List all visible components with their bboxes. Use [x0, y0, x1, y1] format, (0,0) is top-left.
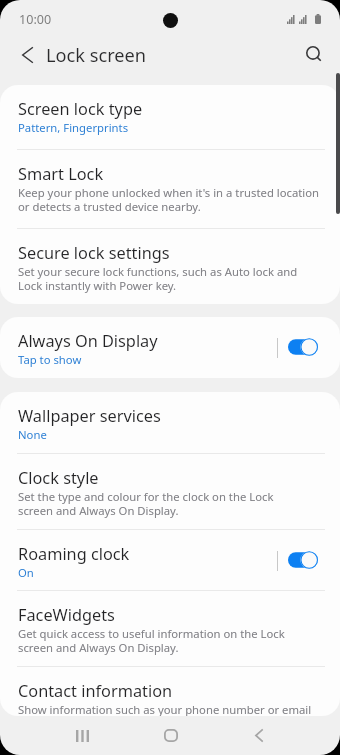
- button[interactable]: Back: [215, 716, 303, 755]
- button[interactable]: Clock style: [0, 454, 340, 530]
- staticText: FaceWidgets: [18, 604, 115, 626]
- staticText: Clock style: [18, 467, 99, 489]
- staticText: Keep your phone unlocked when it's in a …: [18, 185, 320, 214]
- button[interactable]: Wallpaper services: [0, 392, 340, 454]
- staticText: Contact information: [18, 680, 173, 702]
- staticText: Set your secure lock functions, such as …: [18, 264, 298, 293]
- button[interactable]: Navigate up: [0, 39, 157, 71]
- staticText: Tap to show: [18, 352, 82, 367]
- button[interactable]: Roaming clock: [0, 530, 340, 591]
- staticText: Smart Lock: [18, 163, 104, 185]
- staticText: None: [18, 427, 47, 442]
- other: Navigate up: [22, 47, 33, 63]
- button[interactable]: Roaming clock: [288, 551, 318, 569]
- button[interactable]: Search: [297, 37, 329, 69]
- button[interactable]: Smart Lock: [0, 150, 340, 229]
- staticText: Screen lock type: [18, 98, 143, 120]
- staticText: Set the type and colour for the clock on…: [18, 489, 274, 518]
- button[interactable]: Always On Display: [288, 338, 318, 356]
- staticText: Pattern, Fingerprints: [18, 120, 129, 135]
- staticText: Wallpaper services: [18, 405, 161, 427]
- button[interactable]: Home: [126, 716, 215, 755]
- staticText: 10:00: [19, 11, 52, 28]
- staticText: Show information such as your phone numb…: [18, 702, 312, 716]
- staticText: Get quick access to useful information o…: [18, 626, 285, 655]
- button[interactable]: Screen lock type: [0, 85, 340, 150]
- button[interactable]: Contact information: [0, 667, 340, 716]
- staticText: Roaming clock: [18, 543, 130, 565]
- staticText: Secure lock settings: [18, 242, 170, 264]
- button[interactable]: FaceWidgets: [0, 591, 340, 667]
- button[interactable]: Recent apps: [38, 716, 126, 755]
- staticText: Lock screen: [46, 43, 147, 68]
- button[interactable]: Always On Display: [0, 317, 340, 378]
- staticText: Always On Display: [18, 330, 158, 352]
- button[interactable]: Secure lock settings: [0, 229, 340, 304]
- staticText: On: [18, 565, 34, 580]
